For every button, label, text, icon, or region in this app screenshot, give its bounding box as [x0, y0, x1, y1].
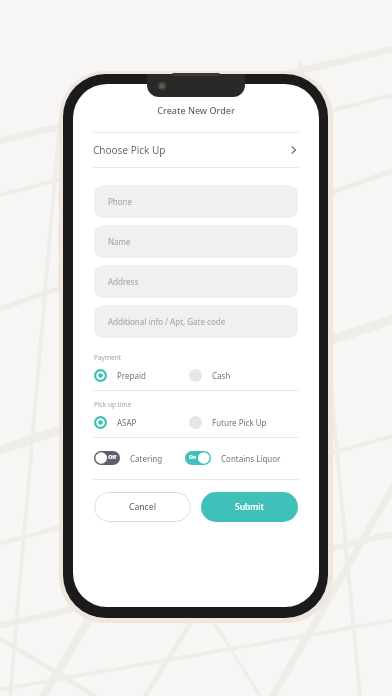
- staticText: Cancel: [129, 501, 156, 513]
- button[interactable]: Choose Pick Up: [73, 133, 319, 167]
- button[interactable]: Phone: [94, 185, 298, 218]
- button[interactable]: Address: [94, 265, 298, 298]
- button[interactable]: Additional info / Apt, Gate code: [94, 305, 298, 338]
- button[interactable]: Cancel: [94, 492, 191, 522]
- staticText: ASAP: [117, 417, 137, 428]
- staticText: Catering: [130, 453, 163, 464]
- staticText: Address: [108, 276, 139, 287]
- button[interactable]: ASAP: [94, 416, 189, 429]
- other: Choose Pick Up: [287, 144, 299, 156]
- button[interactable]: Future Pick Up: [189, 416, 299, 429]
- staticText: Future Pick Up: [212, 417, 267, 428]
- staticText: Choose Pick Up: [93, 143, 166, 157]
- staticText: Off: [94, 454, 116, 461]
- button[interactable]: Name: [94, 225, 298, 258]
- staticText: Pick up time: [94, 400, 132, 409]
- staticText: On: [189, 454, 211, 461]
- button[interactable]: Prepaid: [94, 369, 189, 382]
- staticText: Submit: [235, 501, 264, 513]
- button[interactable]: On: [185, 451, 281, 465]
- staticText: Contains Liquor: [221, 453, 281, 464]
- staticText: Payment: [94, 353, 122, 362]
- staticText: Prepaid: [117, 370, 146, 381]
- button[interactable]: Off: [94, 451, 163, 465]
- button[interactable]: Cash: [189, 369, 299, 382]
- staticText: Create New Order: [73, 104, 319, 116]
- staticText: Name: [108, 236, 131, 247]
- staticText: Additional info / Apt, Gate code: [108, 316, 226, 327]
- staticText: Cash: [212, 370, 231, 381]
- button[interactable]: Submit: [201, 492, 298, 522]
- staticText: Phone: [108, 196, 133, 207]
